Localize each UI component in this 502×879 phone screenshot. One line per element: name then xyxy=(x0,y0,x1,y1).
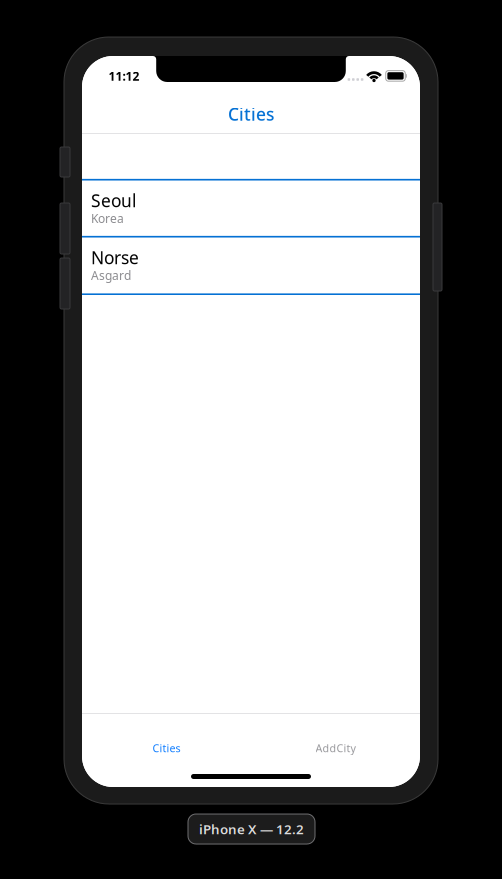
staticText: Norse xyxy=(91,246,139,269)
button[interactable]: Cities xyxy=(82,714,251,762)
staticText: Asgard xyxy=(91,267,131,283)
button[interactable]: Seoul xyxy=(82,180,420,236)
staticText: Korea xyxy=(91,210,124,226)
staticText: Cities xyxy=(152,741,180,755)
staticText: AddCity xyxy=(315,741,355,755)
staticText: Seoul xyxy=(91,189,136,212)
button[interactable]: Norse xyxy=(82,237,420,293)
staticText: Cities xyxy=(228,102,274,125)
button[interactable]: AddCity xyxy=(251,714,420,762)
staticText: iPhone X — 12.2 xyxy=(199,820,304,838)
staticText: 11:12 xyxy=(108,68,139,84)
